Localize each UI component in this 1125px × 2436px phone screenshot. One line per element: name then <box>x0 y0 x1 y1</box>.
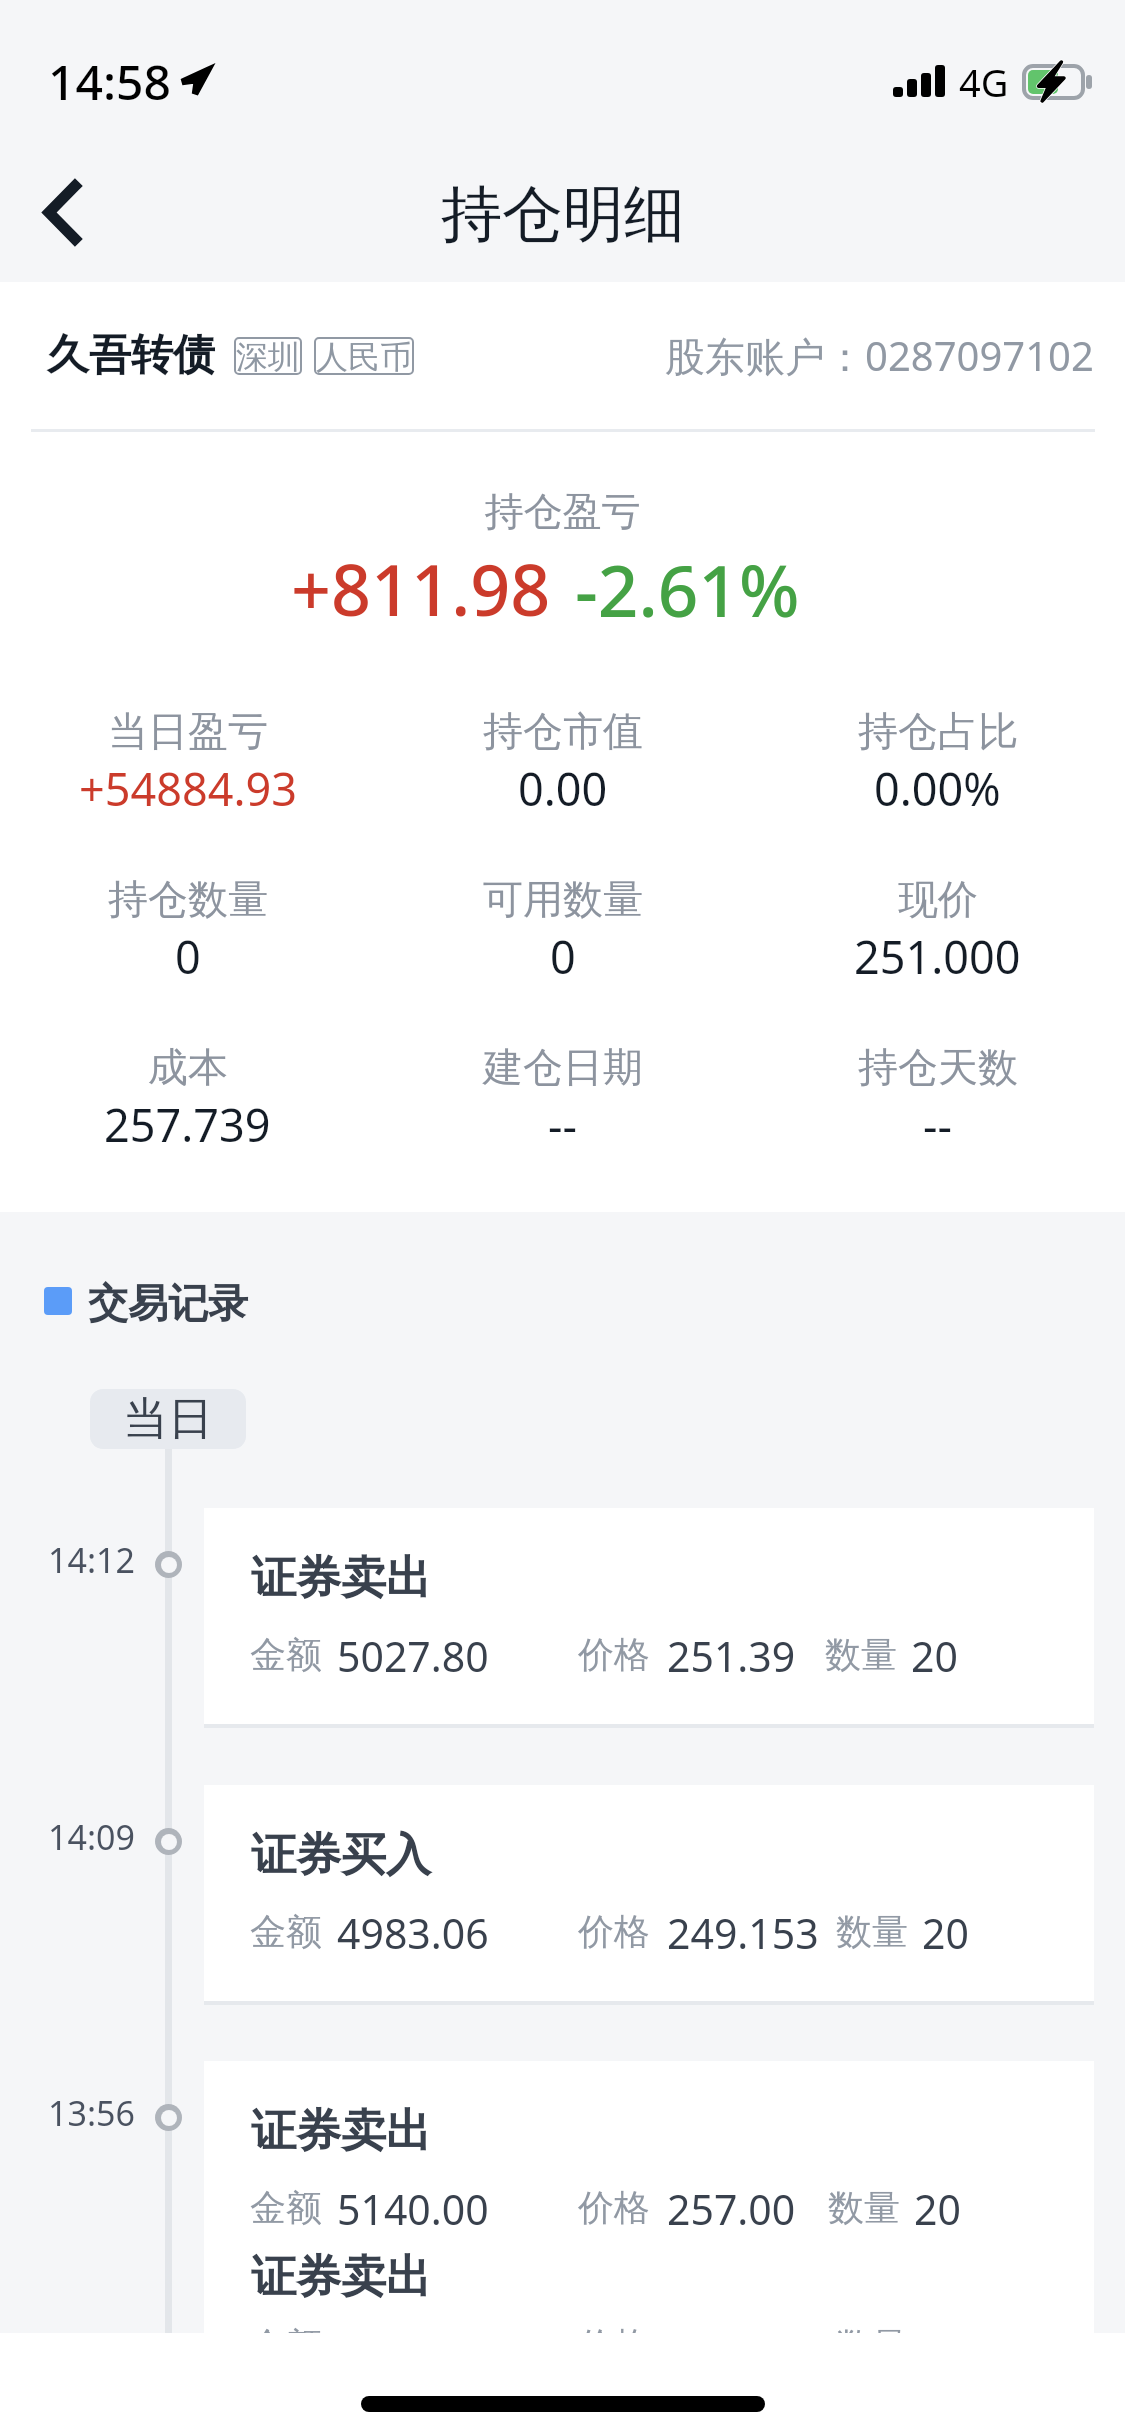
staticText: 当日 <box>123 1391 213 1448</box>
staticText: +811.98 <box>291 541 551 636</box>
staticText: 现价 <box>898 874 978 924</box>
staticText: 0 <box>175 926 201 987</box>
staticText: 价格 <box>578 1909 650 1954</box>
staticText: 证券买入 <box>251 1827 431 1884</box>
staticText: 持仓明细 <box>441 176 685 253</box>
staticText: 持仓盈亏 <box>0 487 1125 536</box>
staticText: 数量 <box>825 1632 897 1677</box>
staticText: -2.61% <box>575 541 800 638</box>
staticText: 20 <box>914 2181 961 2237</box>
staticText: 20 <box>911 1628 958 1684</box>
staticText: 价格 <box>578 2323 650 2368</box>
staticText: 0 <box>550 926 576 987</box>
staticText: 金额 <box>250 1632 322 1677</box>
button[interactable]: 证券卖出 <box>204 2061 1094 2333</box>
staticText: 成本 <box>148 1042 228 1092</box>
button[interactable]: 证券卖出 <box>204 1508 1094 1724</box>
staticText: 久吾转债 <box>47 329 215 382</box>
staticText: -- <box>923 1094 952 1155</box>
staticText: 数量 <box>836 2323 908 2368</box>
staticText: 交易记录 <box>88 1278 248 1328</box>
staticText: 证券卖出 <box>251 2249 431 2306</box>
staticText: 251.39 <box>667 1628 796 1684</box>
staticText: 持仓市值 <box>483 706 643 756</box>
staticText: 14:09 <box>48 1814 135 1860</box>
staticText: 4983.06 <box>337 1905 489 1961</box>
staticText: 数量 <box>836 1909 908 1954</box>
button[interactable]: 证券买入 <box>204 1785 1094 2001</box>
staticText: 当日盈亏 <box>108 706 268 756</box>
staticText: 价格 <box>578 1632 650 1677</box>
staticText: 持仓天数 <box>858 1042 1018 1092</box>
staticText: 深圳 <box>236 337 300 375</box>
staticText: 证券卖出 <box>251 1550 431 1607</box>
staticText: 建仓日期 <box>483 1042 643 1092</box>
staticText: 4G <box>959 56 1009 108</box>
staticText: 人民币 <box>316 337 412 375</box>
staticText: 金额 <box>250 1909 322 1954</box>
staticText: 257.739 <box>104 1094 271 1155</box>
staticText: 249.153 <box>667 1905 819 1961</box>
staticText: 股东账户：0287097102 <box>665 328 1094 383</box>
staticText: 5027.80 <box>337 1628 489 1684</box>
button[interactable]: Back <box>0 140 130 282</box>
staticText: 14:12 <box>48 1537 135 1583</box>
staticText: 0.00% <box>874 758 1001 819</box>
staticText: 257.00 <box>667 2181 796 2237</box>
staticText: 13:56 <box>48 2090 135 2136</box>
staticText: 20 <box>922 1905 969 1961</box>
staticText: +54884.93 <box>79 758 297 819</box>
staticText: 金额 <box>250 2323 322 2368</box>
staticText: 5140.00 <box>337 2181 489 2237</box>
staticText: 251.000 <box>854 926 1021 987</box>
staticText: 价格 <box>578 2185 650 2230</box>
staticText: 持仓数量 <box>108 874 268 924</box>
staticText: 金额 <box>250 2185 322 2230</box>
staticText: 0.00 <box>518 758 608 819</box>
staticText: 可用数量 <box>483 874 643 924</box>
staticText: 证券卖出 <box>251 2103 431 2160</box>
staticText: 持仓占比 <box>858 706 1018 756</box>
staticText: 数量 <box>828 2185 900 2230</box>
staticText: -- <box>548 1094 577 1155</box>
staticText: 14:58 <box>48 49 171 114</box>
